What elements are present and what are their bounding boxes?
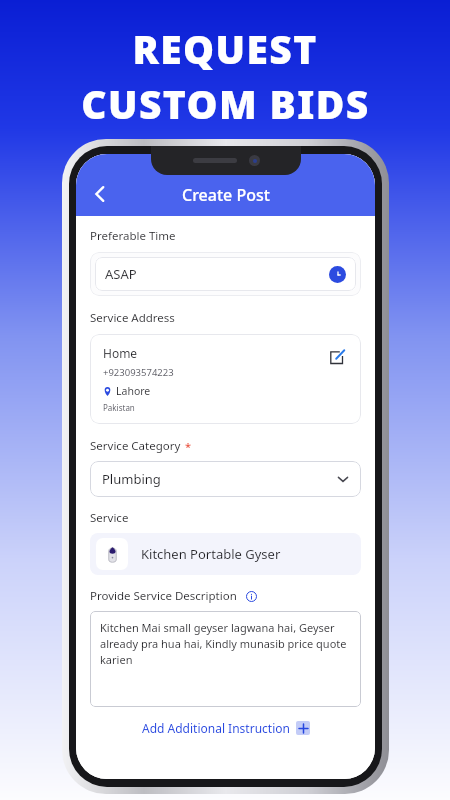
staticText: +923093574223 [103,366,174,379]
button[interactable]: Kitchen Portable Gyser [90,533,361,575]
staticText: Service Address [90,310,175,326]
staticText: CUSTOM BIDS [81,77,370,130]
staticText: Kitchen Mai small geyser lagwana hai, Ge… [100,620,351,667]
staticText: Service [90,510,129,526]
staticText: Service Category [90,438,181,454]
staticText: Add Additional Instruction [142,720,290,736]
staticText: Kitchen Portable Gyser [141,545,281,563]
staticText: Lahore [116,384,151,398]
button[interactable]: Kitchen Mai small geyser lagwana hai, Ge… [90,611,361,707]
button[interactable]: Home [90,334,361,424]
button[interactable]: Info [244,589,258,603]
button[interactable]: Plumbing [90,461,361,497]
staticText: Home [103,345,138,361]
button[interactable]: Edit address [324,345,348,369]
staticText: * [185,439,192,454]
staticText: Create Post [182,184,270,206]
button[interactable]: ASAP [95,257,356,291]
staticText: Provide Service Description [90,588,237,604]
button[interactable]: Back [80,174,120,214]
staticText: Plumbing [102,470,161,488]
staticText: ASAP [105,265,137,283]
staticText: Preferable Time [90,228,176,244]
button[interactable]: Add Additional Instruction [90,720,361,736]
staticText: REQUEST [132,22,318,75]
staticText: Pakistan [103,402,135,413]
